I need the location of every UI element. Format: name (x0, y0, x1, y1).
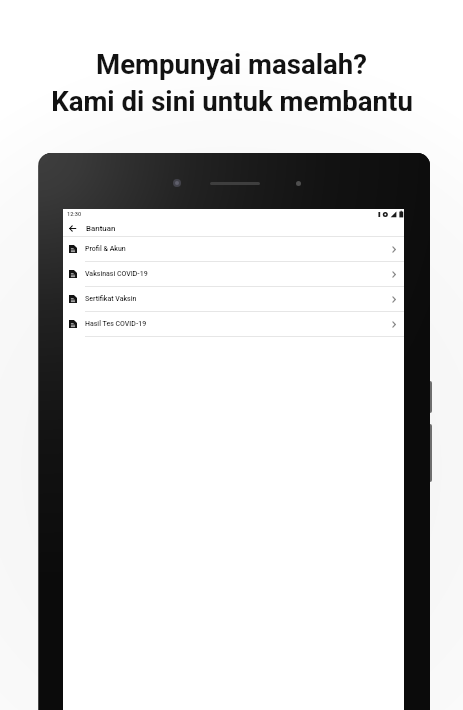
staticText: 12:30 (67, 211, 82, 218)
staticText: Kami di sini untuk membantu (51, 85, 413, 117)
staticText: Mempunyai masalah? (96, 48, 367, 80)
button[interactable]: Vaksinasi COVID-19 (63, 262, 404, 287)
button[interactable]: Hasil Tes COVID-19 (63, 312, 404, 337)
staticText: Hasil Tes COVID-19 (85, 320, 147, 328)
button[interactable]: Sertifikat Vaksin (63, 287, 404, 312)
button[interactable]: Back (69, 225, 76, 232)
staticText: Sertifikat Vaksin (85, 295, 137, 303)
button[interactable]: Profil & Akun (63, 237, 404, 262)
staticText: Bantuan (86, 224, 116, 233)
button[interactable]: Back (63, 220, 404, 236)
staticText: Profil & Akun (85, 245, 126, 253)
staticText: Vaksinasi COVID-19 (85, 270, 148, 278)
